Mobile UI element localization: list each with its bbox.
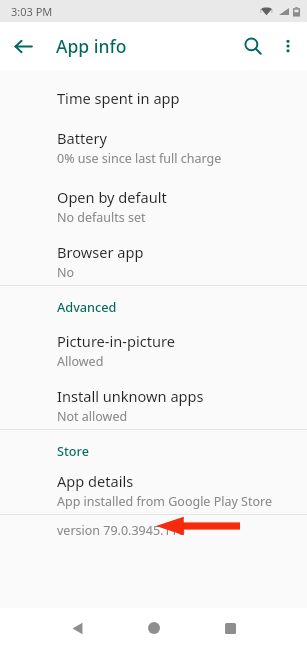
button[interactable]: Browser app [0,230,307,285]
staticText: Not allowed [57,408,128,425]
button[interactable]: Battery [0,112,307,171]
staticText: Install unknown apps [57,386,204,406]
staticText: 0% use since last full charge [57,150,222,167]
staticText: version 79.0.3945.116 [57,522,185,539]
button[interactable]: Install unknown apps [0,374,307,429]
staticText: 3:03 PM [11,4,53,19]
button[interactable]: Back [6,29,40,63]
button[interactable]: Home [138,612,170,644]
staticText: App info [56,34,127,58]
staticText: No defaults set [57,209,146,226]
button[interactable]: Picture-in-picture [0,317,307,374]
staticText: Battery [57,128,107,148]
staticText: Picture-in-picture [57,331,176,351]
staticText: Store [57,442,89,459]
button[interactable]: Back [61,612,93,644]
button[interactable]: More options [270,28,306,64]
staticText: Time spent in app [57,88,180,108]
staticText: App installed from Google Play Store [57,493,272,510]
staticText: No [57,264,75,281]
staticText: Browser app [57,242,144,262]
staticText: Open by default [57,187,167,207]
button[interactable]: Recent apps [214,612,246,644]
button[interactable]: Search [235,28,271,64]
staticText: App details [57,471,134,491]
button[interactable]: Time spent in app [0,72,307,112]
staticText: Advanced [57,298,117,315]
button[interactable]: App details [0,461,307,514]
button[interactable]: Open by default [0,171,307,230]
staticText: Allowed [57,353,104,370]
